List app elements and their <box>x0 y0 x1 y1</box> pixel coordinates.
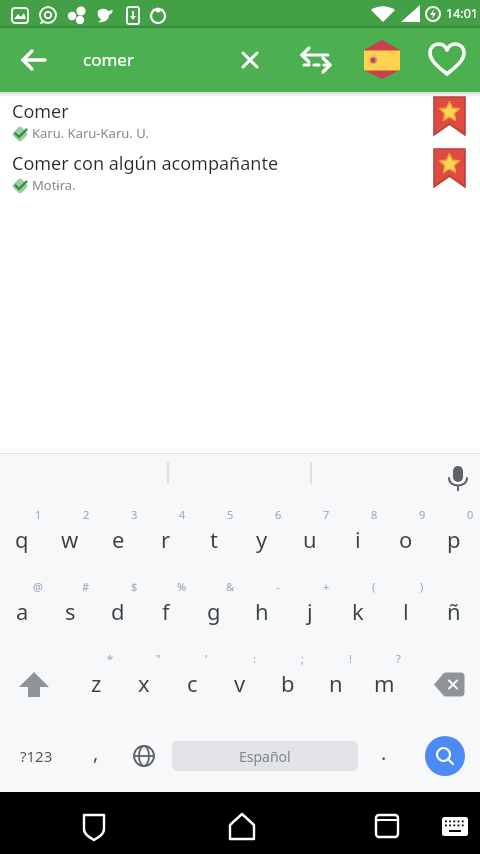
button[interactable] <box>0 648 72 720</box>
staticText: Español <box>239 747 291 766</box>
button[interactable]: @ <box>0 576 48 648</box>
staticText: m <box>374 668 395 698</box>
button[interactable]: ? <box>360 648 408 720</box>
staticText: 2 <box>83 507 90 522</box>
staticText: ?123 <box>20 746 53 766</box>
button[interactable]: ) <box>384 576 432 648</box>
staticText: ñ <box>447 596 461 626</box>
staticText: z <box>91 668 102 698</box>
staticText: ( <box>372 579 376 594</box>
button[interactable]: & <box>192 576 240 648</box>
staticText: Motɨra. <box>32 176 76 194</box>
button[interactable] <box>423 36 471 84</box>
staticText: + <box>323 579 330 594</box>
staticText: ! <box>349 651 352 666</box>
staticText: - <box>276 579 280 594</box>
staticText: d <box>111 596 125 626</box>
button[interactable] <box>357 36 405 84</box>
staticText: 5 <box>227 507 234 522</box>
button[interactable]: 1 <box>0 504 48 576</box>
button[interactable]: 2 <box>48 504 96 576</box>
staticText: c <box>187 668 198 698</box>
staticText: y <box>256 524 268 554</box>
button[interactable]: 9 <box>384 504 432 576</box>
staticText: 6 <box>275 507 282 522</box>
button[interactable] <box>120 720 168 792</box>
staticText: i <box>355 524 361 554</box>
button[interactable]: 4 <box>144 504 192 576</box>
staticText: t <box>210 524 218 554</box>
button[interactable]: * <box>72 648 120 720</box>
staticText: n <box>329 668 343 698</box>
staticText: 14:01 <box>446 5 478 22</box>
button[interactable]: Español <box>172 741 358 771</box>
button[interactable]: : <box>216 648 264 720</box>
button[interactable]: 5 <box>192 504 240 576</box>
button[interactable]: $ <box>96 576 144 648</box>
staticText: comer <box>83 48 134 71</box>
staticText: q <box>15 524 29 554</box>
button[interactable]: ( <box>336 576 384 648</box>
button[interactable]: 8 <box>336 504 384 576</box>
staticText: g <box>207 596 221 626</box>
staticText: Karu. Karu-Karu. U. <box>32 124 149 142</box>
button[interactable]: # <box>48 576 96 648</box>
staticText: ) <box>420 579 424 594</box>
staticText: ? <box>396 651 401 666</box>
button[interactable]: ' <box>168 648 216 720</box>
staticText: a <box>16 596 29 626</box>
button[interactable]: " <box>120 648 168 720</box>
button[interactable]: . <box>358 720 410 792</box>
staticText: % <box>177 579 187 594</box>
staticText: p <box>447 524 461 554</box>
button[interactable]: + <box>288 576 336 648</box>
button[interactable] <box>70 803 118 851</box>
staticText: 4 <box>179 507 186 522</box>
button[interactable]: ñ <box>432 576 480 648</box>
button[interactable] <box>218 803 266 851</box>
button[interactable] <box>226 36 274 84</box>
staticText: x <box>138 668 150 698</box>
staticText: w <box>61 524 79 554</box>
button[interactable] <box>410 720 480 792</box>
staticText: j <box>307 596 313 626</box>
staticText: # <box>82 579 90 594</box>
staticText: 8 <box>371 507 378 522</box>
button[interactable]: Comer con algún acompañante <box>0 149 480 197</box>
staticText: s <box>65 596 76 626</box>
button[interactable]: % <box>144 576 192 648</box>
button[interactable]: 3 <box>96 504 144 576</box>
button[interactable]: - <box>240 576 288 648</box>
staticText: 9 <box>419 507 426 522</box>
staticText: . <box>381 739 387 766</box>
button[interactable]: , <box>72 720 120 792</box>
button[interactable]: 6 <box>240 504 288 576</box>
staticText: Comer <box>12 99 69 124</box>
staticText: e <box>112 524 125 554</box>
staticText: & <box>226 579 235 594</box>
staticText: h <box>255 596 269 626</box>
staticText: : <box>253 651 256 666</box>
staticText: b <box>281 668 295 698</box>
staticText: 3 <box>131 507 138 522</box>
button[interactable]: 0 <box>432 504 480 576</box>
button[interactable] <box>363 803 411 851</box>
staticText: , <box>93 739 99 766</box>
button[interactable]: ! <box>312 648 360 720</box>
staticText: " <box>156 651 161 666</box>
staticText: Comer con algún acompañante <box>12 151 279 176</box>
staticText: k <box>352 596 364 626</box>
button[interactable]: ?123 <box>0 720 72 792</box>
button[interactable] <box>292 36 340 84</box>
button[interactable]: Comer <box>0 97 480 149</box>
staticText: u <box>303 524 317 554</box>
button[interactable] <box>431 803 479 851</box>
staticText: 0 <box>467 507 474 522</box>
staticText: 1 <box>35 507 42 522</box>
staticText: 7 <box>323 507 330 522</box>
staticText: * <box>107 651 114 666</box>
button[interactable] <box>408 648 480 720</box>
button[interactable]: 7 <box>288 504 336 576</box>
button[interactable] <box>10 36 58 84</box>
button[interactable]: ; <box>264 648 312 720</box>
